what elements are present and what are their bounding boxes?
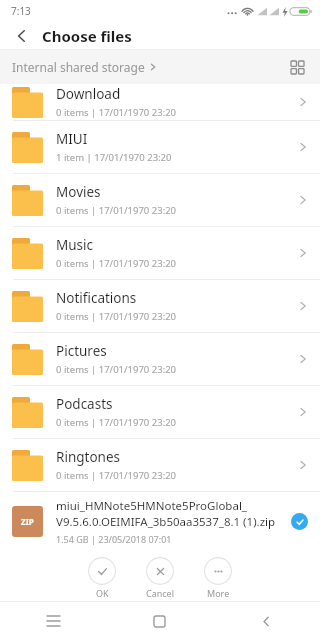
button[interactable]: Cancel bbox=[137, 553, 183, 599]
staticText: Ringtones bbox=[56, 448, 120, 466]
button[interactable]: Back bbox=[10, 24, 34, 48]
button[interactable]: Ringtones bbox=[0, 439, 320, 492]
staticText: MIUI bbox=[56, 130, 88, 148]
staticText: 0 items | 17/01/1970 23:20 bbox=[56, 204, 177, 217]
staticText: ZIP bbox=[21, 516, 34, 527]
button[interactable]: ZIP bbox=[0, 492, 320, 550]
staticText: OK bbox=[96, 587, 109, 599]
staticText: 0 items | 17/01/1970 23:20 bbox=[56, 416, 177, 429]
button[interactable]: Menu bbox=[0, 602, 106, 640]
staticText: 0 items | 17/01/1970 23:20 bbox=[56, 257, 177, 270]
button[interactable]: Notifications bbox=[0, 280, 320, 333]
staticText: 1.54 GB | 23/05/2018 07:01 bbox=[56, 533, 172, 545]
button[interactable]: Selected bbox=[291, 513, 308, 530]
button[interactable]: More bbox=[195, 553, 241, 599]
button[interactable]: Download bbox=[0, 84, 320, 121]
button[interactable]: Grid view bbox=[284, 54, 310, 80]
staticText: Pictures bbox=[56, 342, 107, 360]
button[interactable]: Pictures bbox=[0, 333, 320, 386]
staticText: 7:13 bbox=[11, 4, 31, 18]
staticText: Movies bbox=[56, 183, 101, 201]
staticText: 0 items | 17/01/1970 23:20 bbox=[56, 310, 177, 323]
staticText: 0 items | 17/01/1970 23:20 bbox=[56, 106, 177, 119]
button[interactable]: Podcasts bbox=[0, 386, 320, 439]
staticText: Cancel bbox=[146, 587, 175, 599]
button[interactable]: Movies bbox=[0, 174, 320, 227]
staticText: Internal shared storage bbox=[12, 59, 145, 75]
staticText: miui_HMNote5HMNote5ProGlobal_ bbox=[56, 498, 247, 514]
staticText: Podcasts bbox=[56, 395, 113, 413]
button[interactable]: Home bbox=[106, 602, 213, 640]
staticText: 0 items | 17/01/1970 23:20 bbox=[56, 363, 177, 376]
staticText: V9.5.6.0.OEIMIFA_3b50aa3537_8.1 (1).zip bbox=[56, 514, 276, 530]
staticText: Notifications bbox=[56, 289, 137, 307]
staticText: 0 items | 17/01/1970 23:20 bbox=[56, 469, 177, 482]
staticText: 1 item | 17/01/1970 23:20 bbox=[56, 151, 172, 164]
button[interactable]: Back bbox=[213, 602, 320, 640]
staticText: More bbox=[207, 587, 230, 599]
button[interactable]: OK bbox=[79, 553, 125, 599]
button[interactable]: MIUI bbox=[0, 121, 320, 174]
button[interactable]: Internal shared storage bbox=[12, 59, 157, 75]
button[interactable]: Music bbox=[0, 227, 320, 280]
staticText: Download bbox=[56, 85, 121, 103]
staticText: Choose files bbox=[42, 26, 132, 46]
staticText: Music bbox=[56, 236, 94, 254]
